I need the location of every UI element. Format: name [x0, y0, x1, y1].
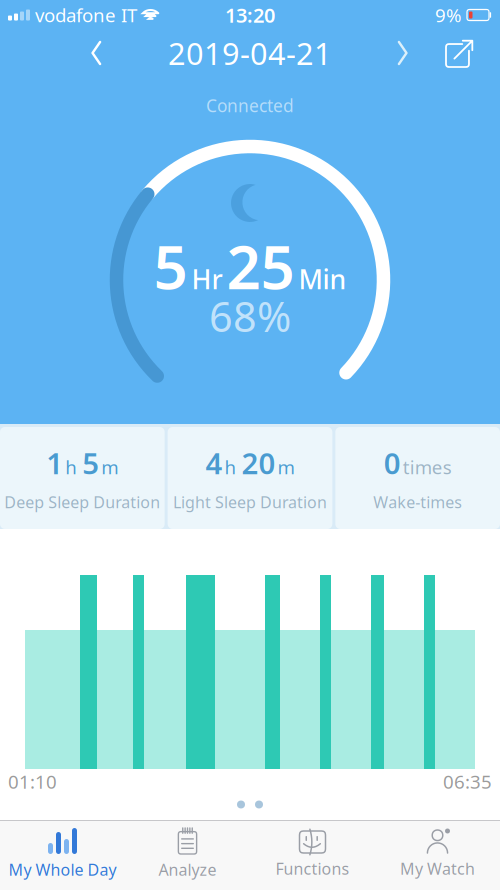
staticText: Min: [298, 261, 346, 297]
button[interactable]: My Watch: [375, 829, 500, 879]
staticText: 0: [384, 443, 401, 482]
staticText: Hr: [191, 261, 222, 297]
staticText: Functions: [275, 858, 349, 879]
staticText: 1: [46, 443, 63, 482]
button[interactable]: Share: [409, 39, 500, 67]
staticText: m: [101, 455, 118, 479]
staticText: 68%: [209, 289, 291, 343]
staticText: Wake-times: [373, 491, 462, 513]
staticText: times: [403, 455, 452, 479]
staticText: vodafone IT: [35, 3, 137, 27]
staticText: Deep Sleep Duration: [4, 491, 160, 513]
staticText: 06:35: [443, 769, 492, 794]
staticText: 01:10: [8, 769, 57, 794]
staticText: 13:20: [225, 2, 275, 28]
staticText: 4: [205, 443, 222, 482]
staticText: 20: [241, 443, 275, 482]
button[interactable]: Functions: [250, 829, 375, 879]
button[interactable]: My Whole Day: [0, 828, 125, 880]
button[interactable]: Next day: [395, 42, 409, 64]
staticText: My Whole Day: [8, 859, 116, 880]
staticText: 2019-04-21: [168, 33, 332, 73]
button[interactable]: Analyze: [125, 828, 250, 880]
button[interactable]: Previous day: [0, 42, 104, 64]
staticText: Light Sleep Duration: [173, 491, 327, 513]
staticText: 5: [82, 443, 99, 482]
staticText: m: [277, 455, 294, 479]
staticText: My Watch: [400, 858, 475, 879]
staticText: h: [65, 455, 77, 479]
staticText: 5: [153, 226, 187, 306]
staticText: Connected: [206, 94, 294, 117]
staticText: 25: [226, 226, 294, 306]
staticText: 9%: [435, 3, 462, 27]
staticText: Analyze: [158, 859, 216, 880]
staticText: h: [224, 455, 236, 479]
